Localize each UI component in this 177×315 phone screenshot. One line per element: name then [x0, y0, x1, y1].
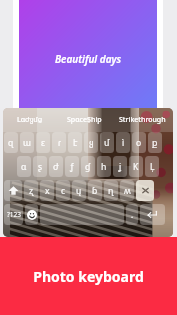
staticText: .	[131, 209, 134, 220]
staticText: Photo keyboard	[33, 267, 144, 286]
button[interactable]: Space	[40, 204, 124, 225]
button[interactable]: ɠ	[81, 156, 95, 177]
staticText: ų	[76, 185, 82, 197]
button[interactable]: ε	[36, 132, 50, 153]
staticText: Lɑժყմց	[17, 115, 43, 125]
staticText: Ƙ	[133, 161, 139, 173]
staticText: ɯ	[23, 137, 31, 149]
button[interactable]: x	[40, 180, 54, 201]
staticText: ɋ	[8, 137, 14, 149]
button[interactable]: Shift	[4, 180, 22, 201]
button[interactable]: Emoji	[25, 204, 38, 225]
button[interactable]: ʐ	[24, 180, 38, 201]
button[interactable]: ղ	[104, 180, 118, 201]
staticText: o	[136, 137, 142, 149]
staticText: ɑ	[21, 161, 27, 173]
button[interactable]: .	[126, 204, 138, 225]
button[interactable]: ɓ	[88, 180, 102, 201]
button[interactable]: Enter	[140, 204, 165, 225]
button[interactable]: Beautiful days	[19, 0, 157, 118]
staticText: x	[45, 185, 50, 197]
staticText: Ļ	[150, 161, 155, 173]
staticText: ժ	[53, 162, 59, 172]
button[interactable]: ų	[72, 180, 86, 201]
button[interactable]: Lɑժყմց	[3, 108, 57, 132]
button[interactable]: c	[56, 180, 70, 201]
staticText: ʝ	[119, 161, 122, 173]
staticText: ?123	[7, 210, 21, 219]
button[interactable]: ʍ	[120, 180, 134, 201]
staticText: Beautiful days	[55, 52, 122, 66]
staticText: ɠ	[85, 161, 91, 173]
button[interactable]: հ	[97, 156, 111, 177]
staticText: ყ	[89, 138, 94, 148]
button[interactable]: Photo keyboard	[0, 237, 177, 315]
staticText: ղ	[108, 186, 114, 196]
staticText: է	[73, 138, 78, 148]
staticText: ʂ	[38, 161, 43, 173]
button[interactable]: ɾ	[52, 132, 66, 153]
staticText: ƒ	[70, 161, 74, 173]
button[interactable]: Ļ	[145, 156, 159, 177]
button[interactable]: ʝ	[113, 156, 127, 177]
staticText: ì	[122, 137, 125, 149]
button[interactable]: ƒ	[65, 156, 79, 177]
button[interactable]: ɯ	[20, 132, 34, 153]
button[interactable]: ყ	[84, 132, 98, 153]
staticText: Strikethrough	[119, 115, 166, 125]
staticText: մ	[104, 138, 110, 148]
button[interactable]: ì	[116, 132, 130, 153]
staticText: ʍ	[124, 185, 131, 197]
button[interactable]: ժ	[49, 156, 63, 177]
button[interactable]: ɋ	[4, 132, 18, 153]
staticText: ք	[152, 138, 158, 148]
staticText: c	[61, 185, 66, 197]
button[interactable]: Backspace	[136, 180, 154, 201]
button[interactable]: Ƙ	[129, 156, 143, 177]
button[interactable]: մ	[100, 132, 114, 153]
staticText: Spɑce$hip	[67, 115, 102, 125]
staticText: հ	[101, 162, 107, 172]
button[interactable]: ?123	[4, 204, 23, 225]
staticText: ʐ	[29, 185, 33, 197]
button[interactable]: Strikethrough	[111, 108, 173, 132]
button[interactable]: ɑ	[17, 156, 31, 177]
button[interactable]: ք	[148, 132, 162, 153]
button[interactable]: Spɑce$hip	[57, 108, 111, 132]
button[interactable]: է	[68, 132, 82, 153]
button[interactable]: o	[132, 132, 146, 153]
staticText: ɾ	[58, 137, 61, 149]
staticText: ɓ	[92, 185, 98, 197]
button[interactable]: ʂ	[33, 156, 47, 177]
staticText: ε	[41, 137, 45, 149]
